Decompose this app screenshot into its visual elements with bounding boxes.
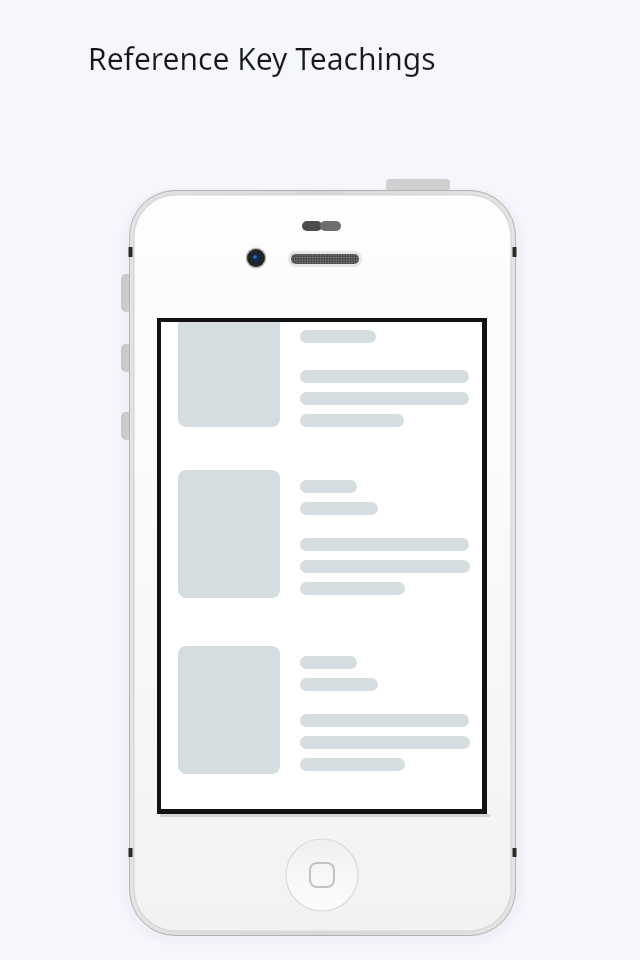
button[interactable]: Reference Key Teachings	[88, 38, 436, 79]
button[interactable]: Phone preview	[0, 0, 640, 960]
